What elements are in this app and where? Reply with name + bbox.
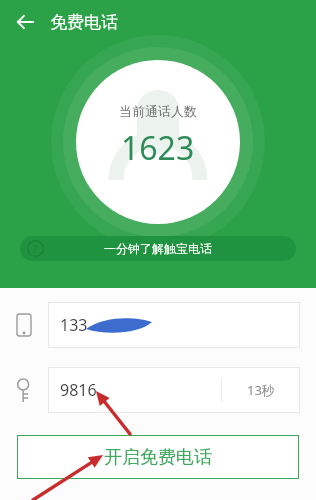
- staticText: 9816: [60, 379, 221, 401]
- staticText: 开启免费电话: [104, 446, 212, 469]
- button[interactable]: 133: [48, 302, 300, 348]
- staticText: 133: [60, 314, 88, 336]
- staticText: 免费电话: [50, 12, 118, 33]
- staticText: 13秒: [247, 381, 275, 399]
- button[interactable]: 9816: [48, 367, 300, 413]
- button[interactable]: Back: [8, 5, 42, 39]
- staticText: 当前通话人数: [119, 103, 197, 119]
- button[interactable]: 开启免费电话: [17, 435, 299, 479]
- staticText: 一分钟了解触宝电话: [104, 241, 212, 256]
- staticText: ?: [33, 242, 38, 256]
- button[interactable]: 一分钟了解触宝电话: [20, 236, 296, 261]
- staticText: 1623: [121, 126, 195, 170]
